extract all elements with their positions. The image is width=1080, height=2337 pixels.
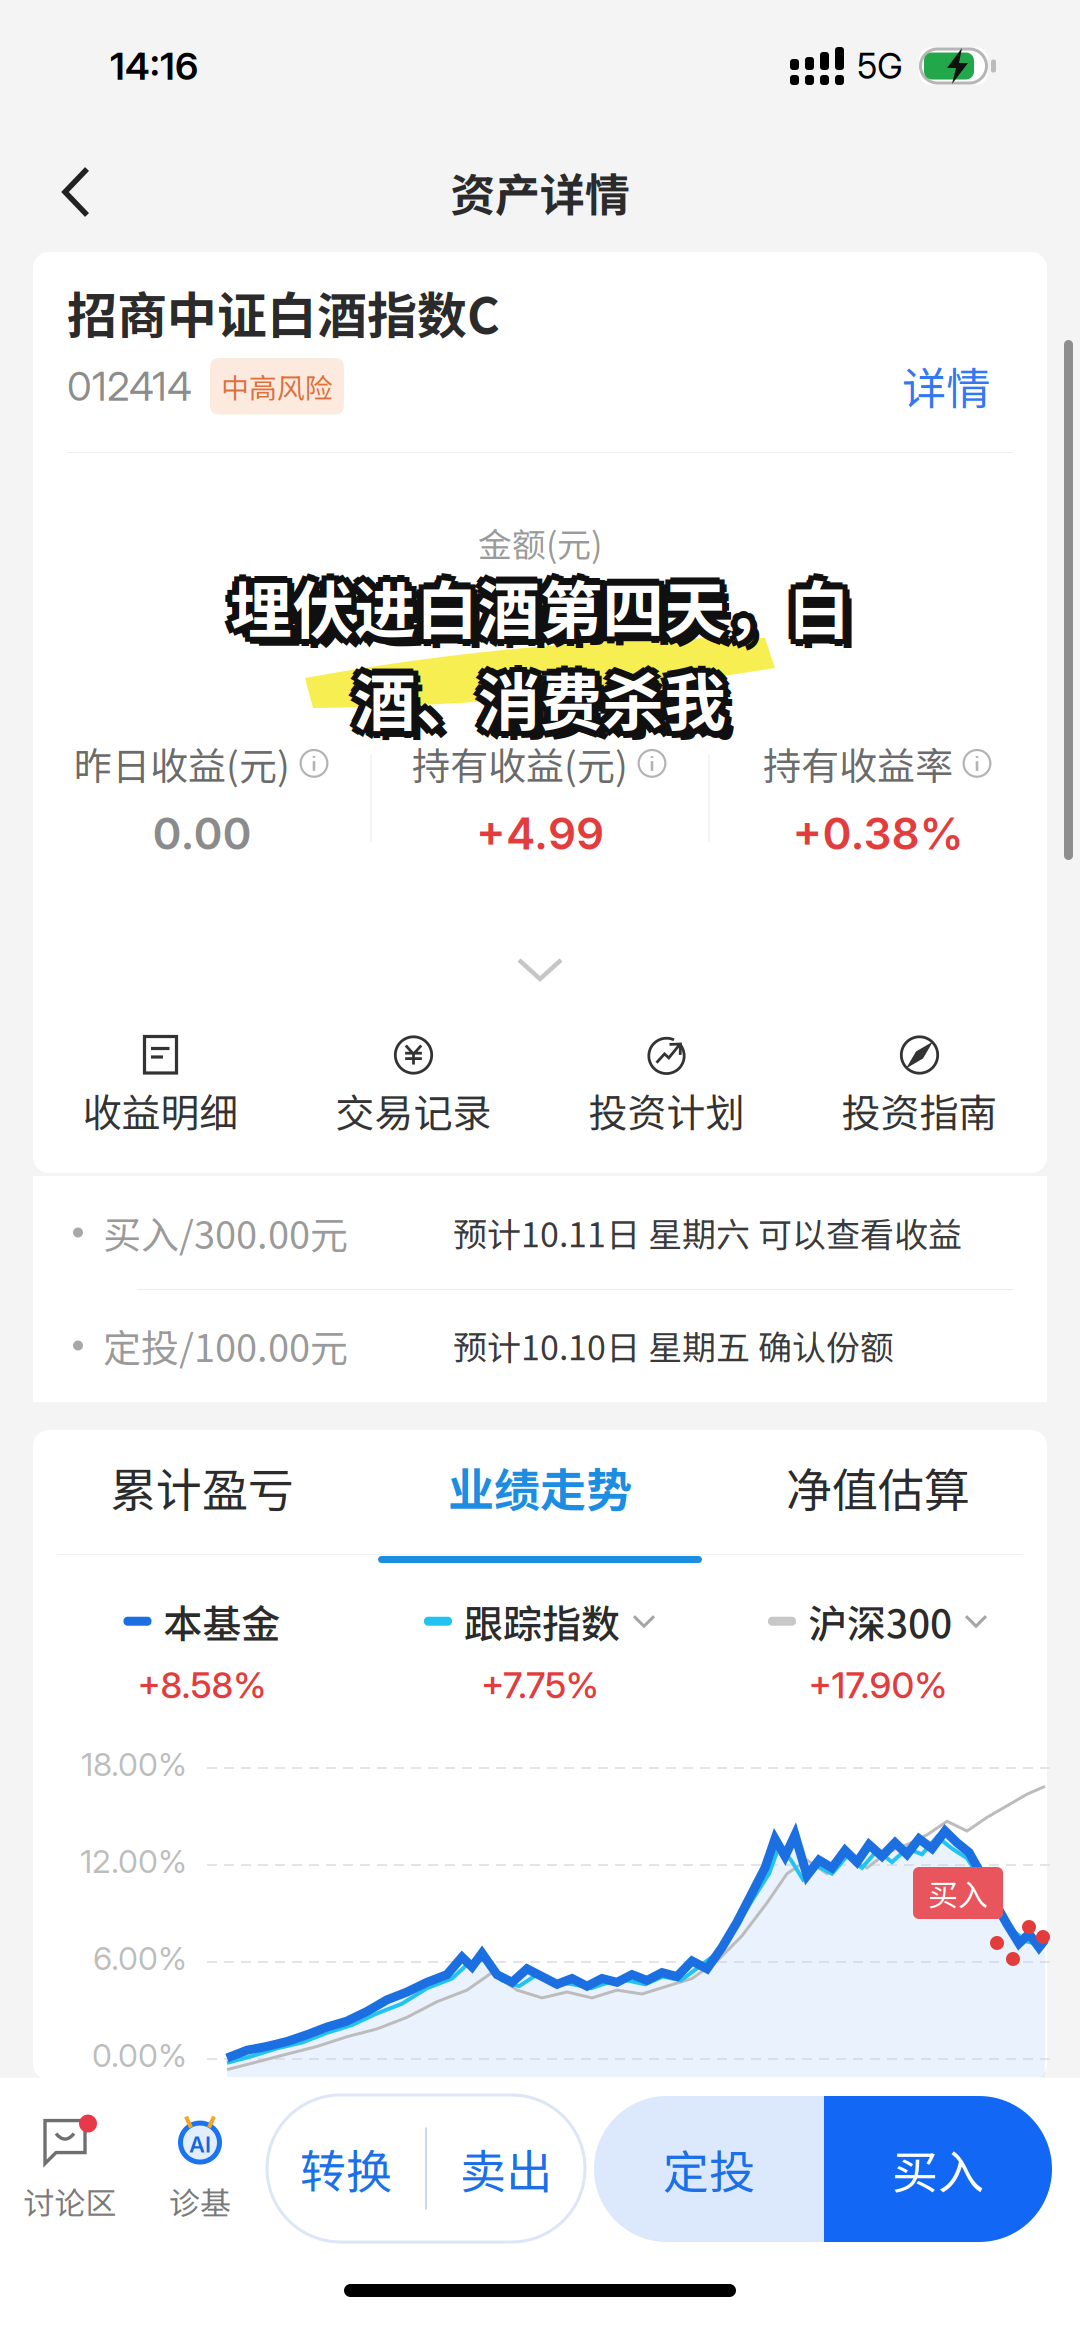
staticText: 买入 [892,2136,984,2202]
button[interactable]: 跟踪指数 [371,1595,709,1705]
staticText: 酒、消费杀我 [349,648,721,738]
staticText: 埋伏进白酒第四天，白 [235,566,855,656]
staticText: AI [189,2131,211,2158]
staticText: 5G [857,45,903,87]
staticText: 买入 [928,1871,988,1915]
button[interactable]: 定投 [594,2096,824,2242]
staticText: 埋伏进白酒第四天，白 [239,570,859,660]
button[interactable]: 沪深300 [709,1595,1047,1705]
staticText: 012414 [67,362,192,410]
staticText: 跟踪指数 [464,1593,620,1649]
staticText: 定投 [663,2136,755,2202]
staticText: 沪深300 [808,1593,952,1649]
staticText: 本基金 [163,1593,280,1649]
staticText: +7.75% [481,1663,599,1707]
staticText: 埋伏进白酒第四天，白 [223,561,843,651]
staticText: 酒、消费杀我 [363,662,735,752]
staticText: 卖出 [460,2135,552,2202]
staticText: 资产详情 [450,159,630,225]
button[interactable]: 讨论区 [0,2104,140,2234]
button[interactable]: Back [28,144,124,240]
button[interactable]: 买入/300.00元 [33,1176,1047,1289]
staticText: 业绩走势 [448,1454,632,1520]
staticText: +0.38% [792,807,963,860]
button[interactable]: 转换 [267,2095,585,2242]
staticText: 6.00% [93,1939,187,1978]
staticText: 详情 [902,353,990,417]
button[interactable]: 详情 [881,350,1011,420]
button[interactable]: 定投/100.00元 [33,1289,1047,1402]
staticText: 转换 [300,2135,392,2202]
staticText: 定投/100.00元 [103,1318,348,1373]
button[interactable]: 业绩走势 [371,1424,709,1550]
staticText: 埋伏进白酒第四天，白 [237,561,857,651]
staticText: 招商中证白酒指数C [67,276,500,348]
staticText: 持有收益率 [763,736,953,791]
button[interactable]: 交易记录 [287,1035,540,1151]
staticText: 酒、消费杀我 [359,658,731,748]
staticText: 酒、消费杀我 [359,648,731,738]
staticText: 18.00% [81,1745,187,1784]
staticText: 累计盈亏 [110,1454,294,1520]
staticText: 酒、消费杀我 [354,653,726,743]
staticText: 净值估算 [786,1454,970,1520]
staticText: 酒、消费杀我 [354,646,726,736]
staticText: 酒、消费杀我 [347,653,719,743]
staticText: 0.00% [92,2036,187,2075]
staticText: +8.58% [137,1663,266,1707]
button[interactable]: 投资计划 [540,1035,793,1151]
button[interactable]: AI [130,2104,270,2234]
staticText: 持有收益(元) [412,736,628,791]
button[interactable]: 累计盈亏 [33,1424,371,1550]
staticText: 投资计划 [588,1082,744,1138]
staticText: 酒、消费杀我 [361,653,733,743]
staticText: 埋伏进白酒第四天，白 [225,556,845,646]
staticText: 讨论区 [23,2179,116,2223]
staticText: 投资指南 [841,1082,997,1138]
button[interactable]: Expand [430,936,650,1004]
button[interactable]: 买入 [824,2096,1052,2242]
staticText: 埋伏进白酒第四天，白 [225,566,845,656]
staticText: 中高风险 [221,366,333,406]
button[interactable]: 净值估算 [709,1424,1047,1550]
staticText: 收益明细 [82,1082,238,1138]
staticText: 交易记录 [335,1082,491,1138]
staticText: 酒、消费杀我 [349,658,721,748]
staticText: 14:16 [110,43,198,89]
staticText: 埋伏进白酒第四天，白 [230,568,850,658]
staticText: 买入/300.00元 [103,1205,348,1260]
staticText: +17.90% [808,1663,947,1707]
button[interactable]: 收益明细 [34,1035,287,1151]
staticText: 埋伏进白酒第四天，白 [230,554,850,644]
staticText: 埋伏进白酒第四天，白 [230,561,850,651]
staticText: 预计10.10日 星期五 确认份额 [453,1321,894,1370]
staticText: 金额(元) [478,518,602,567]
staticText: 0.00 [152,807,251,860]
staticText: +4.99 [476,807,604,860]
staticText: 12.00% [80,1842,187,1881]
staticText: 埋伏进白酒第四天，白 [235,556,855,646]
button[interactable]: 投资指南 [793,1035,1046,1151]
button[interactable]: 本基金 [33,1595,371,1705]
staticText: 预计10.11日 星期六 可以查看收益 [453,1208,962,1257]
staticText: 酒、消费杀我 [354,660,726,750]
staticText: 昨日收益(元) [74,736,290,791]
staticText: 诊基 [169,2179,231,2223]
